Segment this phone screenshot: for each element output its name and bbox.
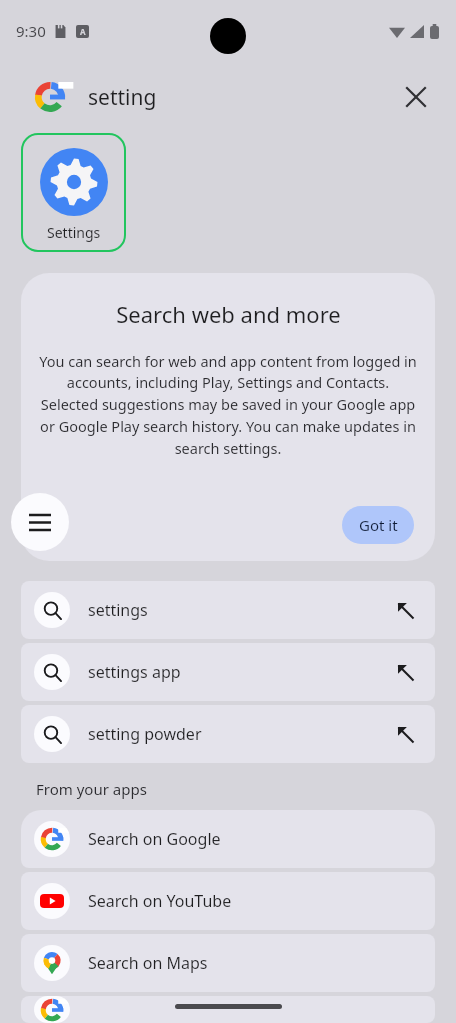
button[interactable]: Search on Google <box>21 810 435 868</box>
button[interactable]: Insert suggestion <box>385 590 425 630</box>
staticText: Settings <box>47 223 101 242</box>
staticText: A <box>80 26 86 37</box>
button[interactable]: Insert suggestion <box>385 714 425 754</box>
staticText: setting powder <box>88 723 202 745</box>
button[interactable]: settings <box>21 581 435 639</box>
staticText: Got it <box>359 515 398 535</box>
staticText: Search web and more <box>116 299 341 329</box>
button[interactable]: Search on YouTube <box>21 872 435 930</box>
staticText: Search on YouTube <box>88 890 232 912</box>
staticText: 9:30 <box>16 21 46 41</box>
button[interactable]: settings app <box>21 643 435 701</box>
staticText: Search on Maps <box>88 952 208 974</box>
button[interactable]: Menu <box>11 493 69 551</box>
button[interactable] <box>21 996 435 1023</box>
staticText: setting <box>88 83 157 112</box>
button[interactable]: Got it <box>342 506 414 544</box>
staticText: settings <box>88 599 148 621</box>
staticText: Search on Google <box>88 828 221 850</box>
button[interactable]: setting powder <box>21 705 435 763</box>
staticText: settings app <box>88 661 181 683</box>
button[interactable]: Clear search <box>392 73 440 121</box>
staticText: From your apps <box>36 779 147 799</box>
button[interactable]: Search on Maps <box>21 934 435 992</box>
staticText: You can search for web and app content f… <box>39 351 417 459</box>
button[interactable]: setting <box>0 62 456 132</box>
button[interactable]: Insert suggestion <box>385 652 425 692</box>
button[interactable]: Settings <box>22 132 125 249</box>
